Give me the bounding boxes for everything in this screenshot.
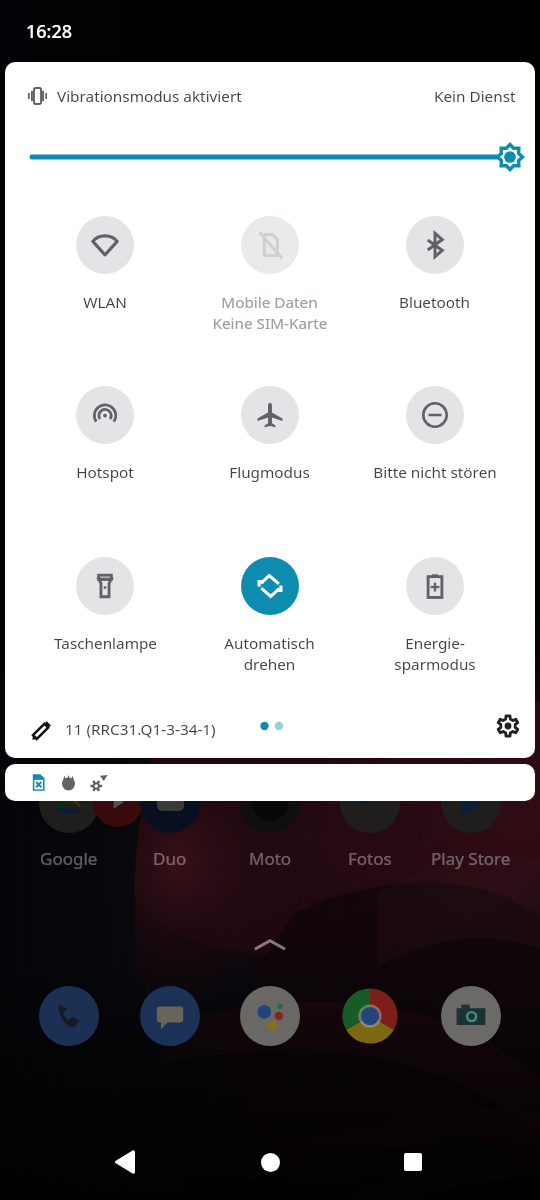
button[interactable]: Hotspot [23,386,187,483]
button[interactable]: Übersicht [385,1145,441,1179]
button[interactable]: Zurück [97,1145,153,1179]
staticText: Vibrationsmodus aktiviert [57,86,242,107]
staticText: Taschenlampe [54,633,157,654]
staticText: Bluetooth [399,292,470,313]
button[interactable]: Automatisch drehen [187,557,352,674]
button[interactable]: Taschenlampe [23,557,187,654]
staticText: Energie- sparmodus [394,633,476,674]
staticText: 16:28 [26,19,73,44]
button[interactable]: Bluetooth [352,216,517,313]
staticText: Duo [153,847,187,870]
button[interactable]: Flugmodus [187,386,352,483]
button[interactable]: Chrome [340,986,400,1046]
button[interactable]: Kamera [441,986,501,1046]
button[interactable]: Einstellungen [489,707,527,745]
staticText: Play Store [431,847,511,870]
button[interactable]: Bitte nicht stören [352,386,517,483]
staticText: Hotspot [76,462,134,483]
staticText: Fotos [348,847,392,870]
staticText: Moto [249,847,292,870]
button[interactable]: Moto [240,773,300,833]
button[interactable]: Mobile Daten [187,216,352,334]
button[interactable]: Fotos [340,773,400,833]
staticText: Flugmodus [229,462,310,483]
button[interactable]: Nachrichten [140,986,200,1046]
button[interactable]: Play Store [441,773,501,833]
button[interactable]: Google [39,773,99,833]
staticText: WLAN [83,292,127,313]
staticText: Mobile Daten [221,292,318,313]
button[interactable]: Duo [140,773,200,833]
button[interactable]: Startbildschirm [242,1145,298,1179]
button[interactable]: Bearbeiten [24,712,60,748]
staticText: Google [40,847,98,870]
staticText: Kein Dienst [434,86,516,107]
button[interactable]: WLAN [23,216,187,313]
button[interactable]: Telefon [39,986,99,1046]
staticText: 11 (RRC31.Q1-3-34-1) [65,719,216,740]
staticText: Bitte nicht stören [373,462,497,483]
button[interactable]: Energie- sparmodus [352,557,517,674]
staticText: Automatisch drehen [224,633,315,674]
button[interactable]: YouTube [93,777,143,827]
button[interactable]: Assistant [240,986,300,1046]
staticText: Keine SIM-Karte [212,313,328,334]
button[interactable] [5,764,535,801]
